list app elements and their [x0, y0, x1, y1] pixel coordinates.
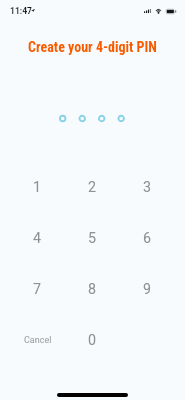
button[interactable]: 4 [10, 213, 65, 264]
staticText: 5 [88, 230, 97, 247]
button[interactable]: 3 [120, 162, 175, 213]
button[interactable]: 7 [10, 264, 65, 315]
button[interactable]: Cancel [10, 315, 65, 366]
button[interactable]: 8 [65, 264, 120, 315]
staticText: Create your 4-digit PIN [28, 39, 157, 55]
staticText: 7 [33, 281, 42, 298]
button[interactable]: 1 [10, 162, 65, 213]
button[interactable]: 0 [65, 315, 120, 366]
button[interactable]: 2 [65, 162, 120, 213]
staticText: 2 [88, 179, 97, 196]
staticText: Cancel [24, 335, 52, 346]
staticText: 4 [33, 230, 42, 247]
staticText: 0 [88, 332, 97, 349]
button[interactable]: 5 [65, 213, 120, 264]
button[interactable]: 6 [120, 213, 175, 264]
staticText: 11:47 [10, 6, 32, 16]
staticText: 1 [33, 179, 42, 196]
staticText: 3 [143, 179, 152, 196]
staticText: 6 [143, 230, 152, 247]
staticText: 8 [88, 281, 97, 298]
button[interactable]: 9 [120, 264, 175, 315]
staticText: 9 [143, 281, 152, 298]
